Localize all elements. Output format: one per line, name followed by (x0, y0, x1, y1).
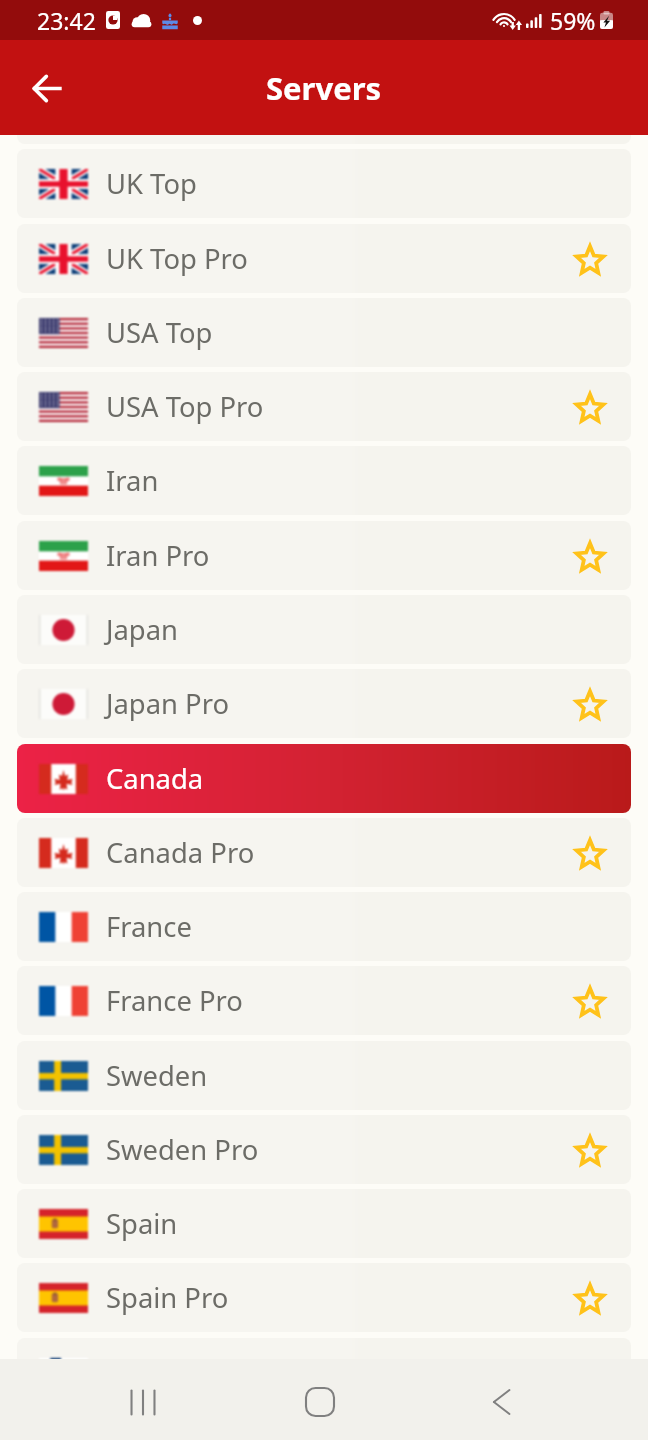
button[interactable]: Finland (17, 1338, 631, 1359)
button[interactable]: Spain (17, 1189, 631, 1258)
button[interactable]: Iran (17, 446, 631, 515)
staticText: Iran (106, 462, 159, 499)
button[interactable]: Sweden Pro (17, 1115, 631, 1184)
button[interactable]: Spain Pro (17, 1263, 631, 1332)
staticText: USA Top (106, 314, 213, 351)
staticText: Canada Pro (106, 834, 255, 871)
staticText: Japan (106, 611, 178, 648)
button[interactable]: France (17, 892, 631, 961)
button[interactable]: Favorite (563, 529, 617, 583)
button[interactable]: Japan Pro (17, 669, 631, 738)
staticText: Spain Pro (106, 1279, 229, 1316)
staticText: UK Top Pro (106, 240, 248, 277)
staticText: 23:42 (37, 5, 96, 36)
button[interactable]: Favorite (563, 1271, 617, 1325)
button[interactable]: Back (19, 60, 75, 116)
button[interactable]: Favorite (563, 826, 617, 880)
button[interactable]: Canada Pro (17, 818, 631, 887)
button[interactable]: Favorite (563, 677, 617, 731)
button[interactable]: Home (284, 1366, 356, 1438)
staticText: France (106, 908, 192, 945)
button[interactable]: Favorite (563, 232, 617, 286)
staticText: Servers (266, 67, 382, 109)
staticText: Iran Pro (106, 537, 210, 574)
button[interactable]: Favorite (563, 380, 617, 434)
staticText: USA Top Pro (106, 388, 264, 425)
button[interactable]: Japan (17, 595, 631, 664)
button[interactable]: Recent apps (107, 1366, 179, 1438)
staticText: Sweden Pro (106, 1131, 259, 1168)
button[interactable]: UK Top (17, 149, 631, 218)
staticText: France Pro (106, 982, 243, 1019)
staticText: Sweden (106, 1057, 208, 1094)
button[interactable]: France Pro (17, 966, 631, 1035)
button[interactable]: Favorite (563, 974, 617, 1028)
button[interactable]: USA Top Pro (17, 372, 631, 441)
button[interactable]: Favorite (563, 1123, 617, 1177)
button[interactable]: Back (465, 1366, 537, 1438)
staticText: Spain (106, 1205, 178, 1242)
staticText: UK Top (106, 165, 197, 202)
staticText: Japan Pro (106, 685, 230, 722)
staticText: Canada (106, 760, 204, 797)
button[interactable]: USA Top (17, 298, 631, 367)
button[interactable]: Canada (17, 744, 631, 813)
button[interactable]: Iran Pro (17, 521, 631, 590)
button[interactable]: UK Top Pro (17, 224, 631, 293)
button[interactable]: Sweden (17, 1041, 631, 1110)
staticText: 59% (550, 5, 596, 36)
